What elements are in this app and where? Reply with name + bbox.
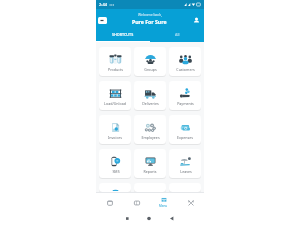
button[interactable]: SMS [99, 149, 131, 178]
staticText: Reports [143, 169, 157, 174]
staticText: 2:44 [99, 2, 107, 7]
staticText: All [175, 32, 180, 37]
button[interactable]: Reports [134, 149, 166, 178]
button[interactable]: Load/Unload [99, 81, 131, 110]
button[interactable]: Dashboard [123, 195, 150, 210]
button[interactable]: Stock [99, 183, 131, 192]
staticText: Menu [159, 204, 168, 208]
button[interactable]: Employees [134, 115, 166, 144]
button[interactable]: Invoices [99, 115, 131, 144]
button[interactable]: Account [192, 16, 201, 25]
button[interactable]: Customers [169, 47, 201, 76]
button[interactable]: App logo [98, 17, 107, 24]
staticText: Deliveries [142, 101, 159, 106]
button[interactable]: Groups [134, 47, 166, 76]
staticText: Load/Unload [104, 101, 126, 106]
staticText: Welcome back, [138, 12, 162, 17]
button[interactable]: Leaves [169, 149, 201, 178]
button[interactable]: Calendar [96, 195, 123, 210]
button[interactable]: More [177, 195, 204, 210]
staticText: Employees [141, 135, 160, 140]
button[interactable]: SHORTCUTS [96, 31, 150, 42]
staticText: Leaves [180, 169, 192, 174]
staticText: Invoices [108, 135, 122, 140]
button[interactable]: Payments [169, 81, 201, 110]
staticText: Products [108, 67, 123, 72]
staticText: SMS [112, 169, 120, 174]
staticText: SHORTCUTS [112, 32, 134, 37]
button[interactable]: Products [99, 47, 131, 76]
button[interactable]: Menu [150, 195, 177, 210]
button[interactable]: Expenses [169, 115, 201, 144]
button[interactable]: Deliveries [134, 81, 166, 110]
staticText: Pure For Sure [132, 18, 167, 25]
staticText: Expenses [177, 135, 193, 140]
staticText: Customers [176, 67, 195, 72]
staticText: Payments [177, 101, 194, 106]
staticText: Groups [144, 67, 157, 72]
button[interactable]: All [150, 31, 204, 42]
